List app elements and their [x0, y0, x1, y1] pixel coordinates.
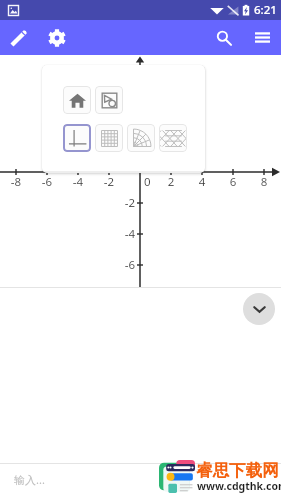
button[interactable]: Grid style	[95, 124, 123, 152]
staticText: -4	[67, 174, 89, 190]
button[interactable]: Menu	[243, 20, 281, 55]
staticText: 2	[160, 174, 182, 190]
staticText: -4	[112, 226, 135, 242]
staticText: 睿思下载网	[196, 460, 279, 481]
staticText: 输入...	[14, 472, 45, 487]
staticText: -2	[98, 174, 120, 190]
button[interactable]: Search	[205, 20, 243, 55]
button[interactable]: Tool	[95, 86, 123, 114]
button[interactable]: Grid style	[127, 124, 155, 152]
staticText: 8	[253, 174, 275, 190]
staticText: 0	[144, 174, 158, 190]
button[interactable]: Grid style	[63, 124, 91, 152]
button[interactable]: Edit	[0, 20, 38, 55]
staticText: -6	[112, 257, 135, 273]
button[interactable]: Grid style	[159, 124, 187, 152]
button[interactable]: Tool	[63, 86, 91, 114]
staticText: 4	[191, 174, 213, 190]
staticText: 6	[222, 174, 244, 190]
staticText: -2	[112, 195, 135, 211]
staticText: 6:21	[254, 2, 277, 18]
button[interactable]: Collapse	[243, 293, 275, 325]
button[interactable]: Settings	[38, 20, 75, 55]
staticText: -8	[5, 174, 27, 190]
staticText: www.cdgthk.com	[197, 479, 281, 493]
staticText: -6	[36, 174, 58, 190]
